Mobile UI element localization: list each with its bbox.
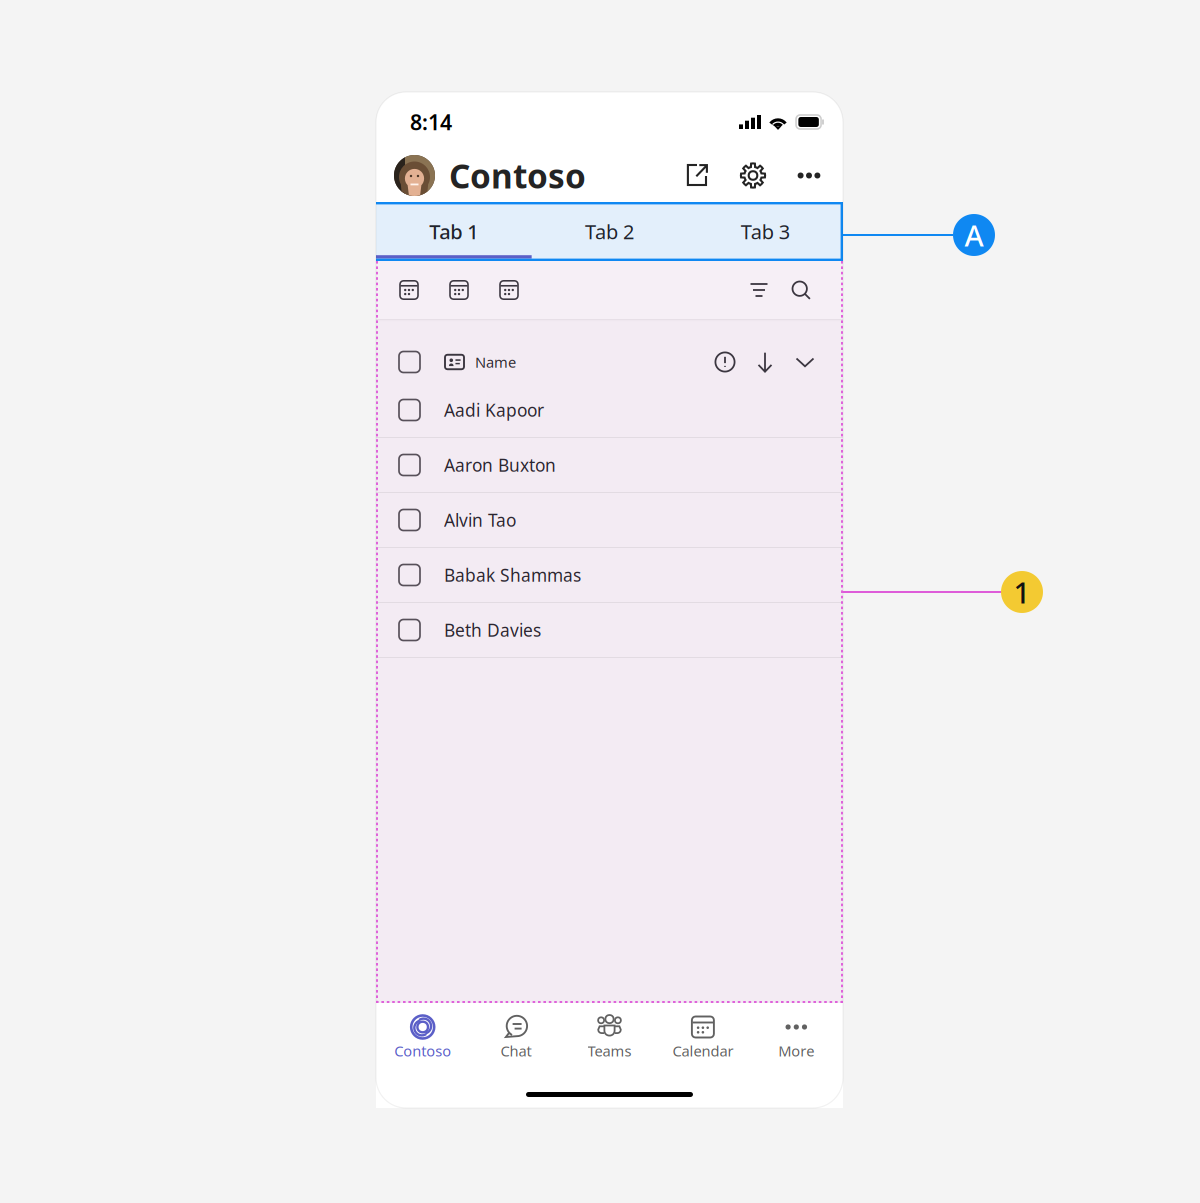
button[interactable]: Aadi Kapoor bbox=[376, 383, 843, 438]
staticText: Chat bbox=[501, 1041, 532, 1060]
button[interactable]: Filter bbox=[748, 279, 770, 301]
button[interactable]: Chat bbox=[469, 1013, 563, 1060]
staticText: Aadi Kapoor bbox=[444, 398, 544, 421]
staticText: Contoso bbox=[449, 153, 586, 198]
button[interactable]: Sort descending bbox=[754, 351, 776, 373]
button[interactable]: List view bbox=[448, 279, 470, 301]
staticText: Tab 1 bbox=[429, 218, 478, 245]
button[interactable]: Tab 2 bbox=[532, 202, 687, 261]
staticText: Tab 2 bbox=[585, 218, 634, 245]
button[interactable]: Beth Davies bbox=[376, 603, 843, 658]
button[interactable]: Contoso bbox=[394, 153, 586, 198]
staticText: Beth Davies bbox=[444, 618, 541, 641]
button[interactable]: Board view bbox=[498, 279, 520, 301]
staticText: 1 bbox=[1013, 572, 1030, 611]
staticText: A bbox=[964, 215, 983, 254]
staticText: Aaron Buxton bbox=[444, 453, 556, 476]
staticText: Alvin Tao bbox=[444, 508, 516, 531]
button[interactable]: Calendar bbox=[656, 1013, 750, 1060]
button[interactable]: Contoso bbox=[376, 1013, 469, 1060]
button[interactable]: Tab 3 bbox=[687, 202, 843, 261]
staticText: Contoso bbox=[394, 1041, 451, 1060]
button[interactable]: Aaron Buxton bbox=[376, 438, 843, 493]
button[interactable]: Open in new window bbox=[682, 160, 712, 190]
staticText: Tab 3 bbox=[741, 218, 790, 245]
button[interactable]: Alerts bbox=[714, 351, 736, 373]
staticText: Teams bbox=[587, 1041, 631, 1060]
button[interactable]: Alvin Tao bbox=[376, 493, 843, 548]
button[interactable]: More options bbox=[794, 160, 824, 190]
button[interactable]: Grid view bbox=[398, 279, 420, 301]
staticText: Babak Shammas bbox=[444, 563, 581, 586]
button[interactable]: Babak Shammas bbox=[376, 548, 843, 603]
button[interactable]: More bbox=[750, 1013, 843, 1060]
staticText: More bbox=[778, 1041, 814, 1060]
button[interactable]: Settings bbox=[738, 160, 768, 190]
staticText: Name bbox=[475, 352, 516, 372]
button[interactable]: Column options bbox=[794, 351, 816, 373]
staticText: Calendar bbox=[672, 1041, 733, 1060]
button[interactable]: Teams bbox=[563, 1013, 656, 1060]
staticText: 8:14 bbox=[410, 108, 452, 136]
button[interactable]: Tab 1 bbox=[376, 202, 532, 261]
button[interactable]: Search bbox=[790, 279, 812, 301]
